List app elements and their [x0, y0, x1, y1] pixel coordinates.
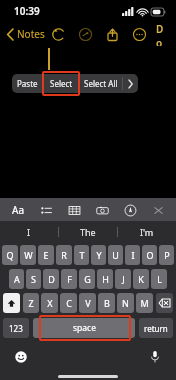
button[interactable]: More options	[130, 25, 148, 43]
button[interactable]: T	[74, 245, 89, 265]
button[interactable]: Notes	[0, 22, 49, 46]
staticText: C	[66, 297, 72, 309]
button[interactable]: I	[125, 245, 140, 265]
staticText: space	[73, 322, 96, 334]
button[interactable]: Paste	[12, 74, 43, 93]
staticText: F	[67, 273, 72, 285]
button[interactable]: Undo	[49, 25, 67, 43]
button[interactable]: O	[142, 245, 157, 265]
staticText: 10:39	[14, 4, 40, 18]
button[interactable]: Share	[103, 25, 121, 43]
staticText: L	[157, 273, 162, 285]
button[interactable]: Z	[23, 293, 39, 313]
button[interactable]: Table	[64, 200, 84, 220]
staticText: P	[164, 249, 170, 261]
staticText: Z	[28, 297, 34, 309]
staticText: E	[43, 249, 49, 261]
button[interactable]: M	[136, 293, 153, 313]
button[interactable]: Checklist	[36, 200, 56, 220]
staticText: V	[85, 297, 91, 309]
button[interactable]: H	[97, 269, 113, 289]
button[interactable]: G	[79, 269, 95, 289]
button[interactable]: Shift	[3, 293, 20, 313]
button[interactable]: D	[43, 269, 59, 289]
staticText: Select All	[84, 78, 118, 89]
staticText: Aa	[12, 203, 24, 217]
button[interactable]: U	[108, 245, 123, 265]
staticText: A	[14, 273, 20, 285]
button[interactable]: V	[79, 293, 96, 313]
button[interactable]: F	[61, 269, 77, 289]
button[interactable]: Text format	[8, 200, 28, 220]
staticText: H	[102, 273, 109, 285]
button[interactable]: Select All	[79, 74, 122, 93]
button[interactable]: Close keyboard	[148, 200, 168, 220]
button[interactable]: C	[60, 293, 77, 313]
staticText: T	[79, 249, 85, 261]
staticText: I	[131, 249, 135, 261]
button[interactable]: L	[151, 269, 167, 289]
staticText: X	[47, 297, 53, 309]
button[interactable]: Select	[44, 74, 78, 93]
button[interactable]: W	[20, 245, 36, 265]
staticText: I	[27, 226, 31, 238]
staticText: I'm	[140, 226, 154, 238]
staticText: N	[122, 297, 129, 309]
button[interactable]: R	[56, 245, 72, 265]
button[interactable]: The	[59, 221, 117, 243]
staticText: Notes	[17, 27, 45, 41]
staticText: 123	[9, 323, 23, 334]
button[interactable]: I'm	[118, 221, 176, 243]
button[interactable]: Dictation	[146, 348, 164, 366]
staticText: U	[112, 249, 119, 261]
button[interactable]: Emoji	[12, 348, 30, 366]
button[interactable]: S	[26, 269, 41, 289]
button[interactable]: E	[38, 245, 54, 265]
button[interactable]: Camera	[92, 200, 112, 220]
button[interactable]: I	[0, 221, 58, 243]
staticText: B	[104, 297, 110, 309]
button[interactable]: Q	[2, 245, 18, 265]
staticText: D	[48, 273, 55, 285]
button[interactable]: Y	[91, 245, 106, 265]
staticText: Y	[96, 249, 102, 261]
button[interactable]: A	[9, 269, 24, 289]
staticText: G	[84, 273, 91, 285]
button[interactable]: Markup	[120, 200, 140, 220]
staticText: W	[24, 249, 33, 261]
button[interactable]: Backspace	[156, 293, 173, 313]
button[interactable]: P	[159, 245, 174, 265]
staticText: S	[31, 273, 36, 285]
button[interactable]: return	[139, 318, 173, 338]
button[interactable]: More	[123, 74, 138, 93]
staticText: Q	[6, 249, 14, 261]
staticText: J	[122, 273, 125, 285]
staticText: The	[80, 226, 96, 238]
button[interactable]: space	[33, 318, 135, 338]
button[interactable]: N	[117, 293, 134, 313]
button[interactable]: Done	[148, 22, 176, 46]
staticText: M	[140, 297, 149, 309]
staticText: return	[144, 323, 168, 334]
button[interactable]: Redo	[76, 25, 94, 43]
staticText: Select	[50, 78, 73, 89]
button[interactable]: 123	[3, 318, 29, 338]
staticText: K	[138, 273, 144, 285]
button[interactable]: X	[41, 293, 58, 313]
staticText: Done	[156, 22, 168, 46]
button[interactable]: B	[98, 293, 115, 313]
staticText: R	[61, 249, 67, 261]
button[interactable]: J	[115, 269, 131, 289]
staticText: Paste	[17, 78, 38, 89]
staticText: O	[146, 249, 154, 261]
button[interactable]: K	[133, 269, 149, 289]
